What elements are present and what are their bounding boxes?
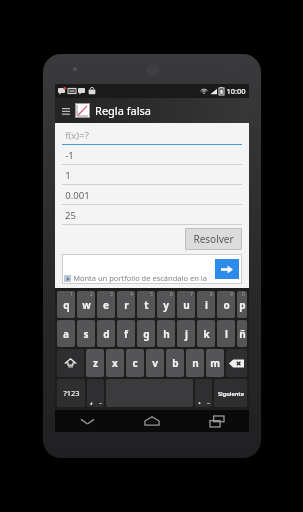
button[interactable]: q [57, 291, 75, 318]
staticText: a [63, 327, 69, 341]
staticText: Monta un portfolio de escándalo en la [73, 273, 207, 283]
button[interactable]: Open advertisement [215, 259, 239, 279]
button[interactable]: Resolver [185, 228, 242, 250]
button[interactable]: f [117, 320, 135, 347]
staticText: . [198, 394, 201, 406]
staticText: l [225, 327, 228, 341]
staticText: h [163, 327, 170, 341]
staticText: f(x)=? [65, 129, 89, 142]
staticText: 1 [70, 291, 73, 298]
button[interactable]: ñ [237, 320, 247, 347]
staticText: 0.001 [65, 189, 90, 202]
button[interactable]: . [195, 379, 212, 407]
staticText: z [93, 356, 98, 370]
staticText: -1 [65, 149, 74, 162]
staticText: v [152, 356, 158, 370]
button[interactable]: z [86, 349, 104, 377]
button[interactable]: Backspace [226, 349, 247, 377]
staticText: f [124, 327, 128, 341]
button[interactable]: h [157, 320, 175, 347]
staticText: x [112, 356, 118, 370]
staticText: u [183, 298, 190, 312]
button[interactable]: ?123 [57, 379, 85, 407]
staticText: 6 [170, 291, 173, 298]
button[interactable]: Shift [57, 349, 84, 377]
staticText: ?123 [63, 388, 80, 398]
staticText: ñ [239, 327, 246, 341]
staticText: r [124, 298, 129, 312]
staticText: q [63, 298, 70, 312]
button[interactable]: d [97, 320, 115, 347]
staticText: n [192, 356, 199, 370]
staticText: i [205, 298, 208, 312]
button[interactable]: Open navigation drawer [60, 101, 72, 121]
staticText: d [103, 327, 110, 341]
staticText: 9 [230, 291, 233, 298]
button[interactable]: Recent apps [184, 410, 249, 432]
button[interactable]: l [217, 320, 235, 347]
staticText: p [239, 298, 246, 312]
staticText: 25 [65, 209, 76, 222]
button[interactable]: b [166, 349, 184, 377]
button[interactable]: w [77, 291, 95, 318]
staticText: 0 [242, 291, 245, 298]
button[interactable]: u [177, 291, 195, 318]
button[interactable]: Home [119, 410, 184, 432]
staticText: 8 [210, 291, 213, 298]
button[interactable]: g [137, 320, 155, 347]
staticText: s [83, 327, 89, 341]
button[interactable]: t [137, 291, 155, 318]
button[interactable]: s [77, 320, 95, 347]
button[interactable]: p [237, 291, 247, 318]
button[interactable]: e [97, 291, 115, 318]
staticText: 7 [190, 291, 193, 298]
staticText: 1 [65, 169, 71, 182]
button[interactable]: o [217, 291, 235, 318]
button[interactable]: r [117, 291, 135, 318]
staticText: t [144, 298, 149, 312]
staticText: k [203, 327, 210, 341]
button[interactable]: v [146, 349, 164, 377]
button[interactable]: c [126, 349, 144, 377]
button[interactable]: i [197, 291, 215, 318]
button[interactable]: y [157, 291, 175, 318]
button[interactable]: x [106, 349, 124, 377]
staticText: 4 [130, 291, 133, 298]
button[interactable]: Monta un portfolio de escándalo en la [62, 254, 242, 284]
staticText: e [103, 298, 109, 312]
staticText: g [143, 327, 150, 341]
button[interactable]: j [177, 320, 195, 347]
staticText: m [210, 356, 220, 370]
staticText: j [185, 327, 188, 341]
button[interactable]: , [87, 379, 104, 407]
staticText: b [172, 356, 179, 370]
button[interactable]: m [206, 349, 224, 377]
staticText: 2 [90, 291, 93, 298]
staticText: Regla falsa [95, 103, 151, 118]
button[interactable]: Siguiente [214, 379, 247, 407]
staticText: , [90, 394, 93, 406]
staticText: y [163, 298, 169, 312]
staticText: 10:00 [226, 86, 246, 96]
button[interactable]: Hide keyboard [55, 410, 119, 432]
staticText: Resolver [193, 232, 234, 246]
staticText: c [132, 356, 138, 370]
button[interactable]: n [186, 349, 204, 377]
staticText: 5 [150, 291, 153, 298]
button[interactable]: k [197, 320, 215, 347]
button[interactable]: a [57, 320, 75, 347]
staticText: w [82, 298, 91, 312]
staticText: 3 [110, 291, 113, 298]
staticText: o [223, 298, 230, 312]
staticText: Siguiente [218, 390, 244, 397]
